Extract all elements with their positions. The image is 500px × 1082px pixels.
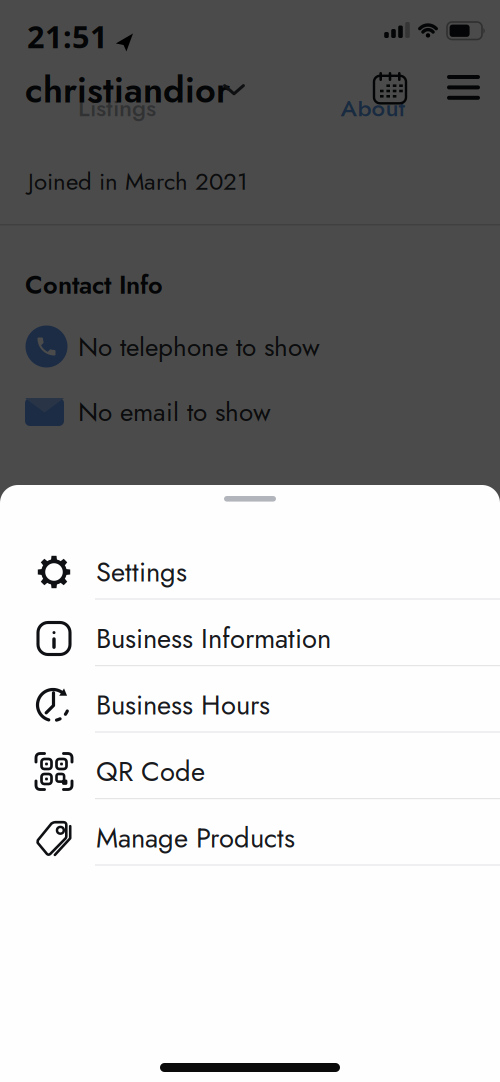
button[interactable]: QR Code <box>0 738 500 804</box>
staticText: QR Code <box>96 752 205 791</box>
staticText: No telephone to show <box>78 328 320 366</box>
staticText: Manage Products <box>96 818 295 858</box>
button[interactable]: Listings <box>57 94 177 122</box>
staticText: 21:51 <box>27 16 108 57</box>
staticText: No email to show <box>78 393 271 431</box>
button[interactable]: Switch account <box>223 84 245 96</box>
staticText: Business Information <box>96 619 331 658</box>
staticText: Listings <box>78 91 156 125</box>
button[interactable]: Settings <box>0 539 500 605</box>
button[interactable]: Manage Products <box>0 805 500 871</box>
staticText: About <box>340 91 405 125</box>
staticText: Contact Info <box>25 267 163 303</box>
button[interactable]: Business Hours <box>0 672 500 738</box>
staticText: christiandior <box>25 64 230 116</box>
staticText: Joined in March 2021 <box>28 164 248 199</box>
staticText: Business Hours <box>96 685 270 725</box>
button[interactable]: Business Information <box>0 605 500 671</box>
button[interactable]: Calendar <box>374 72 408 104</box>
staticText: Settings <box>96 552 187 592</box>
button[interactable]: About <box>313 94 433 122</box>
button[interactable]: Menu <box>447 75 480 100</box>
